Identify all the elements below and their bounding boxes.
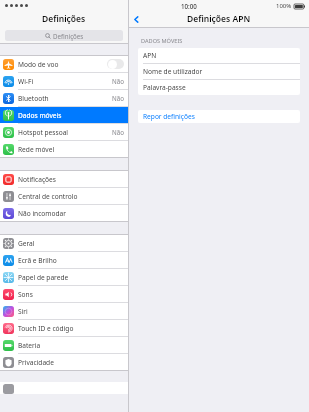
staticText: Privacidade — [18, 358, 124, 367]
staticText: Definições APN — [187, 13, 251, 25]
button[interactable]: Bateria — [0, 337, 128, 353]
button[interactable]: Rede móvel — [0, 141, 128, 157]
staticText: Papel de parede — [18, 273, 124, 282]
button[interactable]: Nome de utilizador — [138, 64, 300, 79]
staticText: Rede móvel — [18, 145, 124, 154]
button[interactable]: Palavra-passe — [138, 80, 300, 95]
staticText: Não — [112, 77, 124, 85]
button[interactable]: Hotspot pessoal — [0, 124, 128, 140]
staticText: Modo de voo — [18, 60, 107, 69]
staticText: Bluetooth — [18, 94, 112, 103]
staticText: APN — [143, 51, 157, 60]
staticText: DADOS MÓVEIS — [141, 37, 183, 45]
button[interactable]: Geral — [0, 235, 128, 251]
button[interactable]: Ecrã e Brilho — [0, 252, 128, 268]
staticText: Não incomodar — [18, 209, 124, 218]
staticText: Central de controlo — [18, 192, 124, 201]
staticText: Hotspot pessoal — [18, 128, 112, 137]
button[interactable]: Modo de voo — [107, 59, 124, 69]
button[interactable]: Wi-Fi — [0, 73, 128, 89]
staticText: Wi-Fi — [18, 77, 112, 86]
button[interactable]: Notificações — [0, 171, 128, 187]
staticText: Geral — [18, 239, 124, 248]
button[interactable]: Modo de voo — [0, 56, 128, 72]
button[interactable]: Repor definições — [138, 110, 300, 123]
button[interactable]: Central de controlo — [0, 188, 128, 204]
staticText: Ecrã e Brilho — [18, 256, 124, 265]
button[interactable]: Voltar — [129, 11, 149, 27]
staticText: Não — [112, 94, 124, 102]
button[interactable]: Papel de parede — [0, 269, 128, 285]
button[interactable]: Pesquisar Definições — [5, 30, 123, 41]
staticText: Sons — [18, 290, 124, 299]
staticText: Repor definições — [143, 112, 195, 121]
staticText: Palavra-passe — [143, 83, 186, 92]
button[interactable]: Touch ID e código — [0, 320, 128, 336]
button[interactable]: APN — [138, 48, 300, 63]
staticText: Siri — [18, 307, 124, 316]
staticText: Definições — [42, 13, 86, 25]
button[interactable]: Sons — [0, 286, 128, 302]
staticText: Não — [112, 128, 124, 136]
button[interactable]: Privacidade — [0, 354, 128, 370]
staticText: Bateria — [18, 341, 124, 350]
staticText: Definições — [53, 32, 84, 40]
button[interactable]: Dados móveis — [0, 107, 128, 123]
button[interactable]: Bluetooth — [0, 90, 128, 106]
staticText: Notificações — [18, 175, 124, 184]
staticText: 100% — [276, 2, 292, 10]
staticText: Dados móveis — [18, 111, 124, 120]
staticText: 10:00 — [181, 2, 197, 10]
staticText: Touch ID e código — [18, 324, 124, 333]
button[interactable]: Não incomodar — [0, 205, 128, 221]
staticText: Nome de utilizador — [143, 67, 203, 76]
button[interactable]: Siri — [0, 303, 128, 319]
